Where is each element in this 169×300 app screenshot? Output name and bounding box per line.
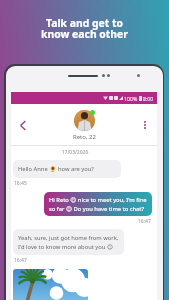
staticText: Reto, 22 [73,133,96,141]
staticText: Yeah, sure, just got home from work, I'd… [18,234,119,250]
button[interactable]: Hello Anne 🌻 how are you? [13,160,121,178]
staticText: 16:47 [14,257,27,264]
button[interactable]: Photo message [13,269,88,300]
button[interactable]: Reto, 22 [73,110,96,141]
button[interactable]: Yeah, sure, just got home from work, I'd… [13,229,124,255]
staticText: 17/03/2020 [11,149,139,156]
button[interactable]: Back [14,116,32,134]
staticText: 16:45 [14,180,27,187]
staticText: 100% [124,95,138,102]
staticText: 16:47 [138,218,151,225]
staticText: 8:00 [143,95,154,102]
button[interactable]: More options [137,117,153,133]
button[interactable]: Hi Reto 😊 nice to meet you, I'm fine so … [44,192,152,216]
staticText: Talk and get to know each other [41,16,128,41]
staticText: Hi Reto 😊 nice to meet you, I'm fine so … [49,196,147,212]
staticText: Hello Anne 🌻 how are you? [18,165,94,173]
